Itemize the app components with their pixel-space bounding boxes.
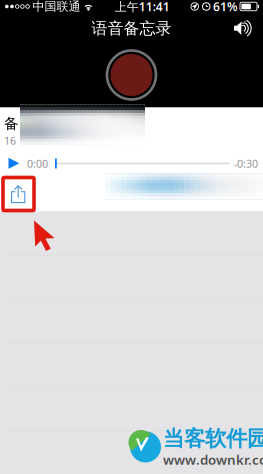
- button[interactable]: Share: [3, 177, 34, 210]
- button[interactable]: Speaker output: [229, 15, 257, 41]
- staticText: -0:30: [234, 156, 258, 171]
- staticText: 中国联通: [32, 0, 80, 14]
- staticText: 当客软件园: [163, 425, 263, 452]
- staticText: 0:00: [27, 156, 48, 171]
- staticText: 语音备忘录: [91, 19, 171, 38]
- staticText: 16: [4, 133, 16, 148]
- staticText: www.downkr.com: [163, 451, 263, 468]
- staticText: 上午11:41: [115, 0, 170, 14]
- staticText: 61%: [213, 0, 238, 14]
- staticText: 备: [4, 114, 19, 132]
